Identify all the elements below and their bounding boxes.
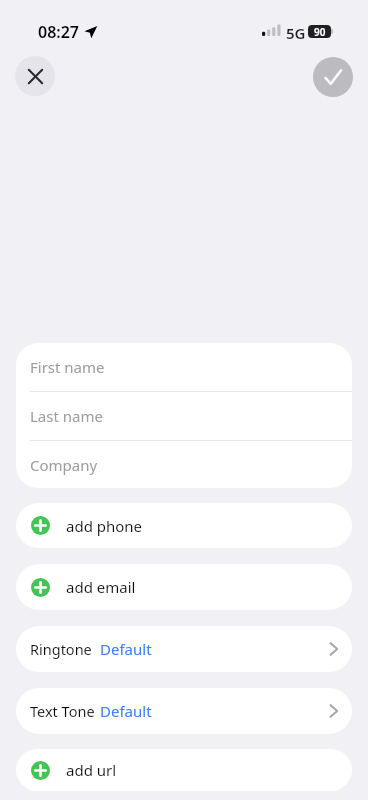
staticText: 08:27	[38, 21, 80, 43]
staticText: Text Tone	[30, 701, 95, 721]
staticText: 5G	[286, 23, 306, 43]
button[interactable]: Ringtone	[16, 626, 352, 672]
staticText: Ringtone	[30, 639, 92, 659]
button[interactable]: add email	[16, 564, 352, 610]
button[interactable]: First name	[16, 343, 352, 391]
staticText: Company	[30, 455, 98, 475]
staticText: Last name	[30, 406, 103, 426]
staticText: add phone	[66, 516, 143, 536]
button[interactable]: add phone	[16, 503, 352, 548]
button[interactable]	[15, 56, 55, 96]
button[interactable]: add url	[16, 749, 352, 791]
button[interactable]	[313, 57, 353, 97]
button[interactable]: Last name	[16, 392, 352, 440]
staticText: 90	[314, 25, 326, 38]
staticText: add email	[66, 577, 136, 597]
staticText: First name	[30, 357, 105, 377]
staticText: add url	[66, 760, 117, 780]
staticText: Default	[100, 701, 152, 721]
staticText: Default	[100, 639, 152, 659]
button[interactable]: Company	[16, 441, 352, 488]
button[interactable]: Text Tone	[16, 688, 352, 734]
